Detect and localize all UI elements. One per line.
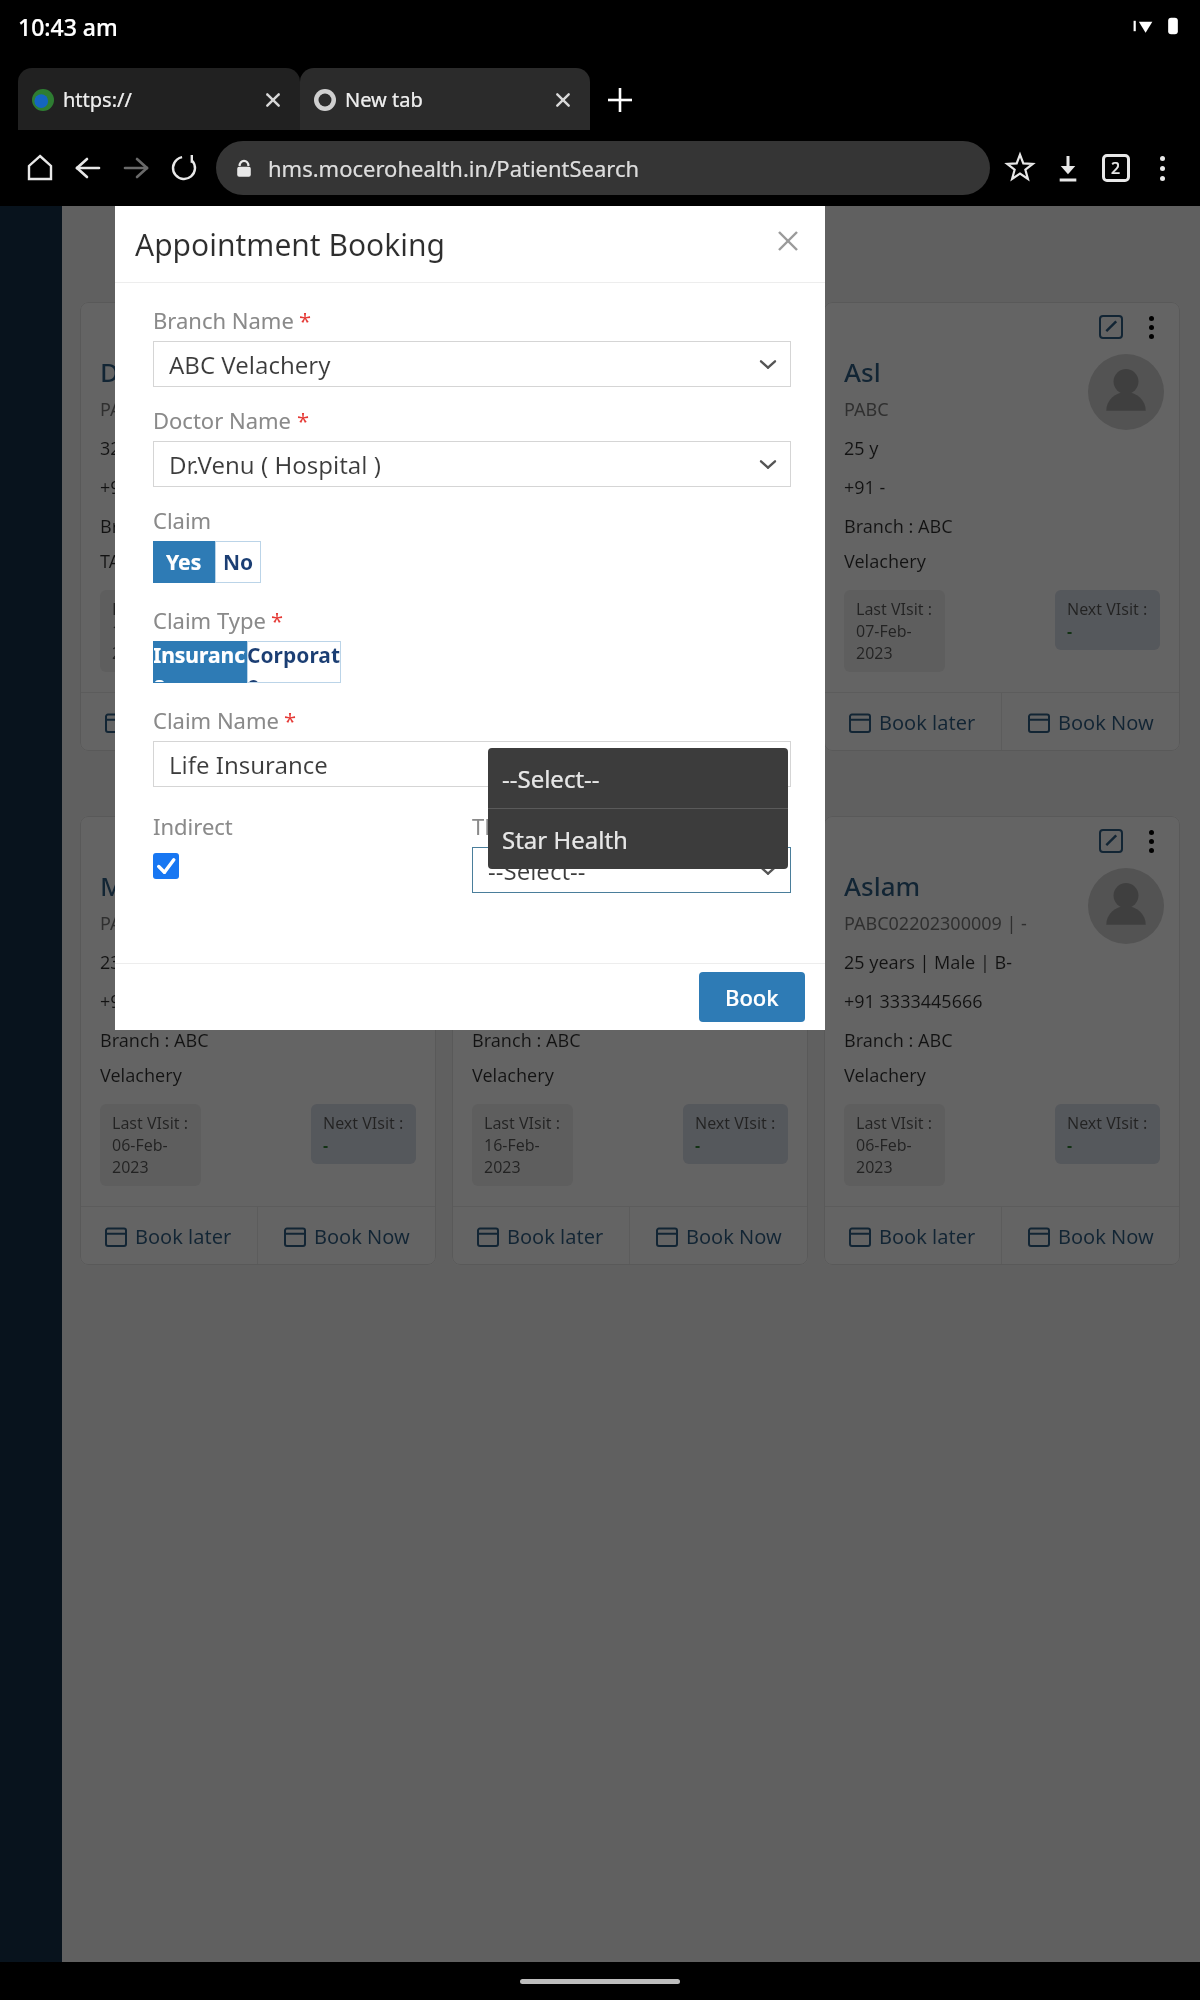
button[interactable]: Book Now (1002, 1207, 1180, 1265)
staticText: Branch Name (153, 305, 294, 335)
button[interactable]: Life Insurance (153, 741, 791, 787)
button[interactable]: Close (771, 224, 805, 258)
button[interactable]: Close tab (260, 87, 286, 113)
staticText: Book Now (686, 744, 782, 771)
button[interactable]: Book Now (258, 1207, 436, 1265)
staticText: +91 8908999888 (100, 989, 239, 1014)
staticText: PABC02202300011 | - (100, 911, 283, 936)
staticText: Last VIsit : (856, 1112, 933, 1134)
staticText: Velachery (844, 549, 926, 574)
button[interactable]: Corporate (247, 641, 341, 683)
staticText: 31 years | Female | O- (472, 950, 663, 975)
staticText: +91 - (100, 475, 142, 500)
staticText: - (323, 620, 329, 642)
staticText: 25 years | Male | B- (844, 950, 1013, 975)
staticText: - (1067, 1134, 1073, 1156)
button[interactable]: Edit (824, 302, 1180, 751)
button[interactable]: Book later (80, 1207, 257, 1265)
button[interactable]: Book later (452, 1207, 629, 1265)
button[interactable]: Edit (80, 302, 436, 751)
staticText: https://hms.mocerohealth.in (63, 86, 256, 113)
button[interactable]: No (215, 541, 261, 583)
button[interactable]: Insurance (153, 641, 247, 683)
button[interactable]: Book Now (258, 693, 436, 751)
button[interactable]: Dr.Venu ( Hospital ) (153, 441, 791, 487)
button[interactable]: ABC Velachery (153, 341, 791, 387)
button[interactable]: Home (16, 144, 64, 192)
button[interactable]: Indirect checkbox (153, 853, 179, 879)
button[interactable]: New tab (590, 70, 650, 130)
staticText: Last VIsit : (856, 598, 933, 620)
button[interactable]: Edit (452, 816, 808, 1265)
button[interactable]: Star Health (488, 809, 788, 869)
button[interactable]: hms.mocerohealth.in/PatientSearch (216, 141, 990, 195)
button[interactable]: Reload (160, 144, 208, 192)
button[interactable]: Book Now (630, 728, 808, 786)
staticText: * (511, 811, 524, 841)
staticText: Branch : ABC (844, 514, 953, 539)
button[interactable]: Forward (112, 144, 160, 192)
button[interactable]: --Select-- (472, 847, 791, 893)
button[interactable]: Close tab (550, 87, 576, 113)
staticText: Book Now (1058, 1223, 1154, 1250)
staticText: Claim (153, 505, 212, 535)
staticText: Corporate (247, 641, 341, 683)
button[interactable]: More (1138, 314, 1164, 340)
staticText: PABC (100, 397, 145, 422)
button[interactable]: Bookmark (996, 144, 1044, 192)
button[interactable]: New tab (300, 68, 590, 130)
button[interactable]: Book Now (1002, 693, 1180, 751)
staticText: 06-Feb- (112, 1134, 168, 1156)
staticText: PABC (844, 397, 889, 422)
button[interactable]: Tabs (1092, 144, 1140, 192)
button[interactable]: Edit (1098, 314, 1124, 340)
staticText: Velachery (100, 1063, 182, 1088)
staticText: Dha (100, 354, 151, 389)
button[interactable]: Edit (80, 816, 436, 1265)
staticText: Book later (879, 709, 976, 736)
button[interactable]: Book later (824, 1207, 1001, 1265)
button[interactable]: Book later (824, 693, 1001, 751)
staticText: Appointment Booking (135, 224, 446, 265)
button[interactable]: Download (1044, 144, 1092, 192)
staticText: Indirect (153, 811, 233, 841)
staticText: Last VIsit : (484, 1112, 561, 1134)
button[interactable]: Yes (153, 541, 215, 583)
button[interactable]: Edit (824, 816, 1180, 1265)
button[interactable]: More (1138, 828, 1164, 854)
button[interactable]: Book later (80, 693, 257, 751)
button[interactable]: Book later (452, 728, 629, 786)
button[interactable]: https://hms.mocerohealth.in (18, 68, 300, 130)
button[interactable]: More (766, 828, 792, 854)
button[interactable]: Edit (1098, 828, 1124, 854)
staticText: --Select-- (502, 762, 600, 795)
staticText: Aslam (844, 868, 921, 903)
button[interactable]: --Select-- (488, 748, 788, 808)
staticText: Velachery (844, 1063, 926, 1088)
staticText: hms.mocerohealth.in/PatientSearch (268, 153, 640, 183)
button[interactable]: Back (64, 144, 112, 192)
staticText: Book later (507, 744, 604, 771)
staticText: * (284, 705, 297, 735)
staticText: Branch : ABC (100, 514, 209, 539)
staticText: Next VIsit : (695, 1112, 776, 1134)
button[interactable]: More options (1140, 146, 1184, 190)
staticText: Claim Type (153, 605, 266, 635)
staticText: 2023 (856, 642, 893, 664)
staticText: Book Now (686, 1223, 782, 1250)
button[interactable]: Book Now (630, 1207, 808, 1265)
button[interactable]: Book (699, 972, 805, 1022)
staticText: * (299, 305, 312, 335)
button[interactable]: Edit (452, 302, 808, 786)
